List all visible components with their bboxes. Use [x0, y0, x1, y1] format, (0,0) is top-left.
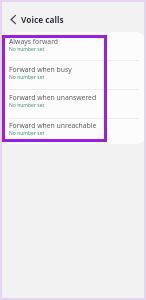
- button[interactable]: Forward when busy: [0, 60, 146, 88]
- staticText: Forward when unanswered: [9, 93, 97, 102]
- staticText: No number set: [9, 74, 45, 81]
- staticText: Always forward: [9, 37, 59, 46]
- button[interactable]: Back: [1, 4, 25, 28]
- button[interactable]: Forward when unreachable: [0, 116, 146, 144]
- button[interactable]: Forward when unanswered: [0, 88, 146, 116]
- staticText: Forward when busy: [9, 65, 72, 74]
- button[interactable]: Always forward: [0, 32, 146, 60]
- staticText: No number set: [9, 46, 45, 53]
- staticText: No number set: [9, 102, 45, 109]
- staticText: Forward when unreachable: [9, 121, 97, 130]
- staticText: Voice calls: [21, 14, 64, 25]
- staticText: No number set: [9, 130, 45, 137]
